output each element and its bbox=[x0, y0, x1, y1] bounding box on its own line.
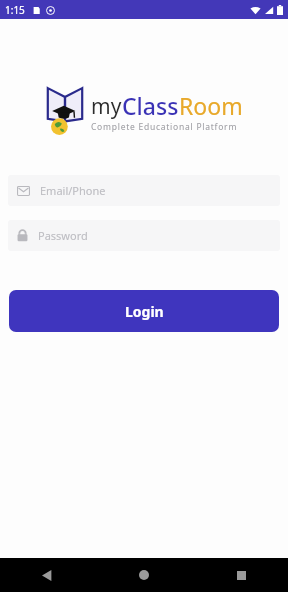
button[interactable]: Home bbox=[127, 558, 161, 592]
staticText: Email/Phone bbox=[40, 183, 106, 198]
button[interactable]: Login bbox=[9, 290, 279, 332]
staticText: Login bbox=[125, 302, 164, 321]
staticText: Password bbox=[38, 228, 88, 243]
staticText: 1:15 bbox=[5, 3, 25, 17]
staticText: my bbox=[91, 92, 122, 121]
button[interactable]: Recent apps bbox=[224, 558, 258, 592]
button[interactable]: Email/Phone bbox=[8, 175, 280, 206]
staticText: Class bbox=[122, 90, 179, 121]
staticText: Room bbox=[179, 90, 243, 121]
staticText: Complete Educational Platform bbox=[91, 121, 238, 133]
button[interactable]: Password bbox=[8, 220, 280, 251]
button[interactable]: Back bbox=[30, 558, 64, 592]
